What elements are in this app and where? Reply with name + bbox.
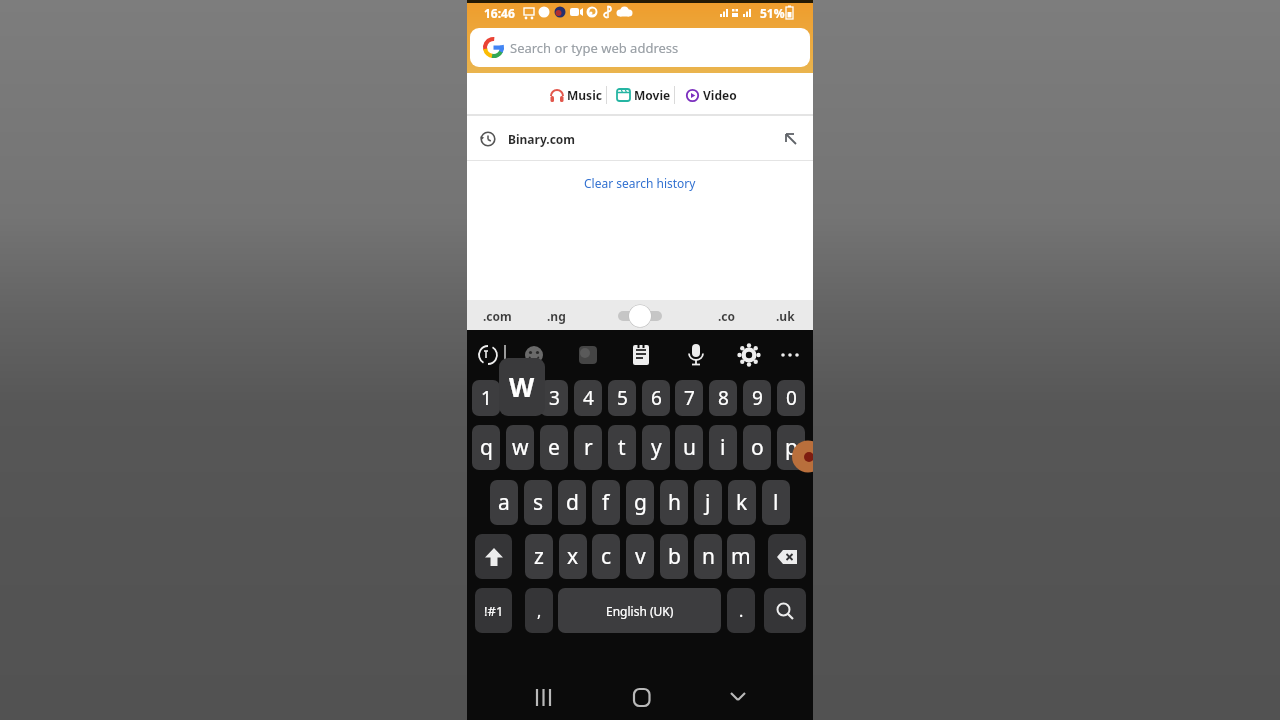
button[interactable]: 4 bbox=[574, 380, 602, 416]
staticText: 9 bbox=[752, 385, 763, 411]
button[interactable]: Clear search history bbox=[560, 169, 720, 197]
staticText: , bbox=[537, 600, 542, 622]
button[interactable] bbox=[638, 343, 664, 367]
staticText: 51% bbox=[760, 5, 785, 21]
staticText: 2 bbox=[515, 385, 526, 411]
staticText: q bbox=[480, 433, 493, 462]
button[interactable]: 1 bbox=[472, 380, 500, 416]
staticText: m bbox=[731, 542, 751, 571]
button[interactable]: .com bbox=[472, 302, 522, 330]
staticText: l bbox=[773, 488, 779, 517]
staticText: g bbox=[634, 488, 647, 517]
button[interactable]: c bbox=[592, 534, 620, 579]
staticText: .ng bbox=[547, 308, 566, 324]
button[interactable]: Search or type web address bbox=[470, 28, 810, 67]
button[interactable]: l bbox=[762, 480, 790, 525]
button[interactable]: . bbox=[727, 588, 755, 633]
button[interactable]: j bbox=[694, 480, 722, 525]
button[interactable]: z bbox=[525, 534, 553, 579]
button[interactable] bbox=[501, 343, 527, 367]
staticText: j bbox=[705, 488, 711, 517]
staticText: 3 bbox=[549, 385, 560, 411]
button[interactable]: o bbox=[743, 425, 771, 470]
staticText: !#1 bbox=[484, 602, 504, 620]
button[interactable]: English (UK) bbox=[558, 588, 721, 633]
button[interactable]: 0 bbox=[777, 380, 805, 416]
button[interactable]: m bbox=[727, 534, 755, 579]
button[interactable] bbox=[467, 116, 813, 160]
staticText: Search or type web address bbox=[510, 39, 679, 57]
button[interactable]: !#1 bbox=[475, 588, 512, 633]
button[interactable]: .uk bbox=[760, 302, 810, 330]
staticText: 0 bbox=[786, 385, 797, 411]
staticText: English (UK) bbox=[606, 603, 674, 619]
button[interactable] bbox=[528, 343, 554, 367]
staticText: c bbox=[601, 542, 612, 571]
button[interactable]: 9 bbox=[743, 380, 771, 416]
button[interactable]: .ng bbox=[531, 302, 581, 330]
button[interactable]: q bbox=[472, 425, 500, 470]
staticText: Binary.com bbox=[508, 131, 576, 147]
button[interactable]: a bbox=[490, 480, 518, 525]
button[interactable] bbox=[764, 588, 806, 633]
button[interactable]: x bbox=[559, 534, 587, 579]
staticText: d bbox=[566, 488, 579, 517]
button[interactable] bbox=[473, 343, 499, 367]
button[interactable]: u bbox=[675, 425, 703, 470]
staticText: 4 bbox=[583, 385, 594, 411]
staticText: Movie bbox=[634, 87, 671, 103]
button[interactable]: , bbox=[525, 588, 553, 633]
button[interactable]: g bbox=[626, 480, 654, 525]
button[interactable]: y bbox=[642, 425, 670, 470]
button[interactable]: v bbox=[626, 534, 654, 579]
button[interactable] bbox=[627, 680, 655, 714]
button[interactable]: f bbox=[592, 480, 620, 525]
staticText: u bbox=[683, 433, 696, 462]
staticText: 6 bbox=[651, 385, 662, 411]
staticText: e bbox=[548, 433, 560, 462]
button[interactable] bbox=[724, 680, 752, 714]
button[interactable]: r bbox=[574, 425, 602, 470]
button[interactable]: i bbox=[709, 425, 737, 470]
button[interactable]: k bbox=[728, 480, 756, 525]
button[interactable]: 7 bbox=[675, 380, 703, 416]
staticText: . bbox=[739, 600, 744, 622]
staticText: r bbox=[584, 433, 593, 462]
button[interactable]: n bbox=[694, 534, 722, 579]
button[interactable] bbox=[768, 534, 806, 579]
staticText: b bbox=[668, 542, 681, 571]
button[interactable] bbox=[583, 343, 609, 367]
button[interactable]: d bbox=[558, 480, 586, 525]
staticText: t bbox=[618, 433, 626, 462]
button[interactable]: 6 bbox=[642, 380, 670, 416]
button[interactable]: p bbox=[777, 425, 805, 470]
button[interactable]: 8 bbox=[709, 380, 737, 416]
button[interactable] bbox=[613, 84, 683, 106]
button[interactable]: 2 bbox=[506, 380, 534, 416]
staticText: Video bbox=[703, 87, 737, 103]
button[interactable]: 5 bbox=[608, 380, 636, 416]
button[interactable]: .co bbox=[702, 302, 752, 330]
staticText: Music bbox=[567, 87, 602, 103]
button[interactable] bbox=[681, 84, 751, 106]
staticText: f bbox=[602, 488, 610, 517]
button[interactable]: h bbox=[660, 480, 688, 525]
staticText: x bbox=[567, 542, 579, 571]
button[interactable]: 3 bbox=[540, 380, 568, 416]
button[interactable] bbox=[543, 84, 613, 106]
button[interactable] bbox=[666, 343, 692, 367]
staticText: 7 bbox=[684, 385, 695, 411]
staticText: o bbox=[751, 433, 764, 462]
button[interactable]: w bbox=[506, 425, 534, 470]
button[interactable]: t bbox=[608, 425, 636, 470]
button[interactable] bbox=[475, 534, 512, 579]
button[interactable]: s bbox=[524, 480, 552, 525]
button[interactable]: b bbox=[660, 534, 688, 579]
staticText: 5 bbox=[617, 385, 628, 411]
button[interactable]: e bbox=[540, 425, 568, 470]
staticText: z bbox=[534, 542, 544, 571]
button[interactable] bbox=[523, 680, 551, 714]
staticText: y bbox=[651, 433, 662, 462]
button[interactable] bbox=[611, 343, 637, 367]
button[interactable] bbox=[556, 343, 582, 367]
